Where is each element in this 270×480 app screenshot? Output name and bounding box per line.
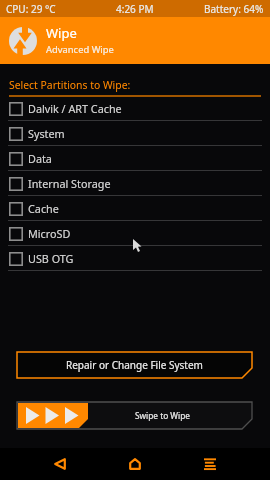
button[interactable]: Home: [113, 448, 157, 480]
staticText: USB OTG: [28, 251, 74, 266]
staticText: CPU: 29 °C: [6, 2, 56, 16]
staticText: Repair or Change File System: [66, 358, 203, 372]
button[interactable]: System: [0, 121, 270, 146]
staticText: Data: [28, 151, 52, 166]
staticText: Swipe to Wipe: [135, 410, 190, 421]
staticText: Dalvik / ART Cache: [28, 101, 122, 116]
button[interactable]: USB OTG: [0, 246, 270, 271]
staticText: Cache: [28, 201, 59, 216]
staticText: Wipe: [46, 24, 77, 42]
button[interactable]: Swipe to Wipe: [17, 402, 252, 429]
staticText: Internal Storage: [28, 176, 111, 191]
button[interactable]: Internal Storage: [0, 171, 270, 196]
button[interactable]: Recent apps: [188, 448, 232, 480]
staticText: 4:26 PM: [116, 2, 154, 16]
staticText: Battery: 64%: [204, 2, 264, 16]
staticText: Select Partitions to Wipe:: [9, 78, 131, 92]
button[interactable]: Wipe: [0, 17, 270, 64]
button[interactable]: Back: [38, 448, 82, 480]
staticText: System: [28, 126, 65, 141]
staticText: Advanced Wipe: [46, 43, 114, 56]
button[interactable]: Repair or Change File System: [17, 352, 252, 378]
button[interactable]: Cache: [0, 196, 270, 221]
staticText: MicroSD: [28, 226, 71, 241]
button[interactable]: Data: [0, 146, 270, 171]
button[interactable]: MicroSD: [0, 221, 270, 246]
button[interactable]: Dalvik / ART Cache: [0, 96, 270, 121]
